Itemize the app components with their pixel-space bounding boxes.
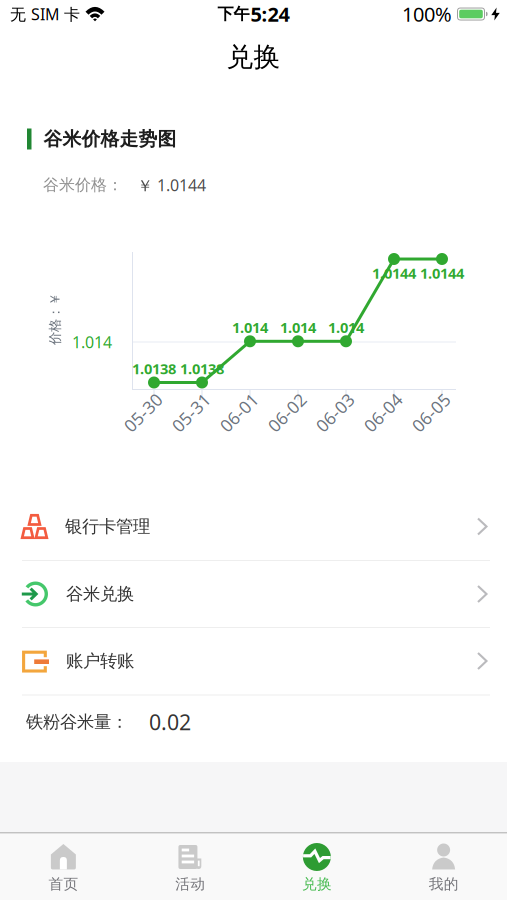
staticText: 06-01 bbox=[216, 401, 262, 424]
staticText: 活动 bbox=[175, 875, 205, 893]
staticText: 兑换 bbox=[226, 41, 280, 73]
button[interactable]: 首页 bbox=[0, 836, 127, 900]
staticText: 兑换 bbox=[302, 875, 332, 893]
button[interactable]: 我的 bbox=[380, 836, 507, 900]
staticText: 0.02 bbox=[149, 708, 191, 736]
staticText: 06-03 bbox=[312, 401, 358, 424]
button[interactable]: 谷米兑换 bbox=[0, 560, 507, 627]
staticText: 1.014 bbox=[328, 318, 364, 337]
staticText: 谷米兑换 bbox=[66, 583, 134, 605]
staticText: 05-30 bbox=[120, 401, 166, 424]
staticText: 银行卡管理 bbox=[65, 516, 150, 537]
staticText: 06-02 bbox=[264, 401, 310, 424]
staticText: 无 SIM 卡 bbox=[10, 3, 80, 25]
button[interactable]: 账户转账 bbox=[0, 627, 507, 694]
staticText: 1.014 bbox=[72, 331, 112, 353]
staticText: 100% bbox=[402, 1, 452, 27]
staticText: 05-31 bbox=[168, 401, 214, 424]
staticText: 1.014 bbox=[232, 318, 268, 337]
staticText: 铁粉谷米量： bbox=[26, 711, 128, 733]
staticText: 1.0138 bbox=[180, 359, 224, 378]
staticText: 首页 bbox=[48, 875, 78, 893]
staticText: 5:24 bbox=[250, 1, 289, 27]
staticText: 1.014 bbox=[280, 318, 316, 337]
staticText: 谷米价格走势图 bbox=[43, 127, 176, 150]
staticText: 06-05 bbox=[408, 401, 454, 424]
staticText: ￥ 1.0144 bbox=[137, 174, 206, 196]
button[interactable]: 银行卡管理 bbox=[0, 493, 507, 560]
staticText: 1.0144 bbox=[372, 263, 416, 283]
staticText: 谷米价格： bbox=[43, 175, 123, 195]
staticText: 06-04 bbox=[360, 401, 406, 424]
staticText: 价格：￥ bbox=[29, 311, 81, 327]
staticText: 1.0144 bbox=[420, 263, 464, 283]
staticText: 1.0138 bbox=[132, 359, 176, 378]
staticText: 账户转账 bbox=[66, 650, 134, 672]
button[interactable]: 兑换 bbox=[253, 836, 380, 900]
button[interactable]: 活动 bbox=[127, 836, 254, 900]
staticText: 我的 bbox=[429, 875, 459, 893]
staticText: 下午 bbox=[217, 4, 249, 24]
